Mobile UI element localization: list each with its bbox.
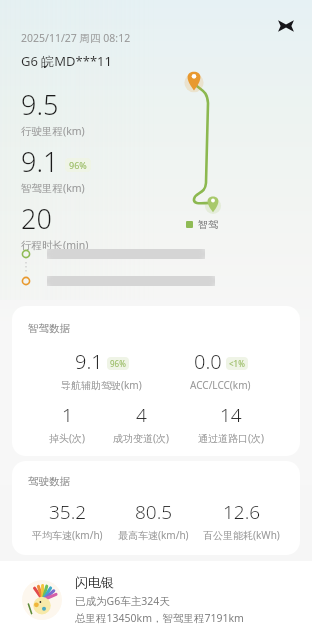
staticText: 成功变道(次) [113,431,169,445]
staticText: 20 [21,200,52,237]
button[interactable]: 智驾数据 [12,306,300,456]
staticText: 平均车速(km/h) [32,528,103,542]
staticText: 80.5 [135,499,173,525]
staticText: 智驾数据 [28,322,70,335]
button[interactable]: Share [268,8,304,44]
staticText: 已成为G6车主324天 [75,594,170,608]
staticText: 智驾 [198,218,218,231]
staticText: 96% [110,358,126,369]
staticText: 百公里能耗(kWh) [203,528,280,542]
staticText: G6 皖MD***11 [21,52,112,70]
staticText: 9.1 [21,143,59,180]
staticText: 9.5 [21,86,59,123]
staticText: 14 [220,402,242,428]
staticText: ACC/LCC(km) [190,378,251,392]
staticText: 总里程13450km，智驾里程7191km [75,611,244,625]
staticText: 掉头(次) [49,431,85,445]
staticText: 35.2 [49,499,87,525]
staticText: 4 [136,402,147,428]
staticText: 最高车速(km/h) [118,528,189,542]
button[interactable]: 驾驶数据 [12,461,300,555]
staticText: 12.6 [223,499,261,525]
staticText: 通过道路口(次) [198,431,264,445]
staticText: <1% [229,358,245,369]
button[interactable]: 闪电银 [0,561,312,638]
staticText: 驾驶数据 [28,475,70,488]
staticText: 导航辅助驾驶(km) [61,378,142,392]
staticText: 行驶里程(km) [21,124,85,138]
staticText: 闪电银 [75,574,114,590]
staticText: 智驾里程(km) [21,181,85,195]
staticText: 0.0 [194,348,222,375]
staticText: 96% [69,159,87,171]
staticText: 行程时长(min) [21,238,89,252]
staticText: 2025/11/27 周四 08:12 [21,31,131,45]
staticText: 1 [62,402,73,428]
staticText: 9.1 [75,348,103,375]
